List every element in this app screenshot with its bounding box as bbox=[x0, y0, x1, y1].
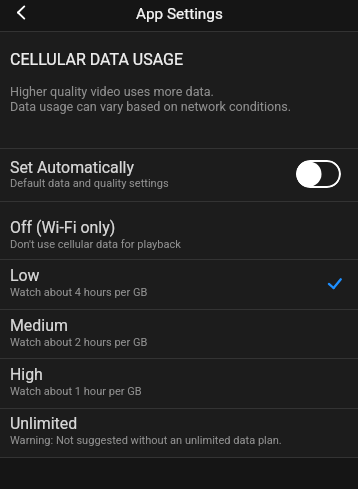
staticText: Low bbox=[10, 266, 40, 285]
staticText: Off (Wi-Fi only) bbox=[10, 218, 116, 237]
staticText: Default data and quality settings bbox=[10, 177, 169, 190]
staticText: Don't use cellular data for playback bbox=[10, 238, 181, 251]
staticText: High bbox=[10, 365, 43, 384]
staticText: CELLULAR DATA USAGE bbox=[10, 50, 184, 69]
button[interactable]: Set Automatically bbox=[0, 149, 358, 201]
button[interactable]: Medium bbox=[0, 310, 358, 358]
staticText: Watch about 2 hours per GB bbox=[10, 336, 148, 349]
staticText: Medium bbox=[10, 316, 68, 335]
staticText: Higher quality video uses more data. Dat… bbox=[10, 84, 292, 114]
staticText: Watch about 1 hour per GB bbox=[10, 385, 142, 398]
staticText: App Settings bbox=[136, 5, 223, 23]
staticText: Set Automatically bbox=[10, 158, 134, 177]
staticText: Warning: Not suggested without an unlimi… bbox=[10, 434, 282, 447]
staticText: Unlimited bbox=[10, 414, 78, 433]
button[interactable]: Set Automatically bbox=[296, 160, 341, 188]
button[interactable]: Unlimited bbox=[0, 409, 358, 457]
button[interactable]: Low bbox=[0, 260, 358, 309]
button[interactable]: Back bbox=[0, 0, 42, 31]
button[interactable]: High bbox=[0, 359, 358, 408]
staticText: Watch about 4 hours per GB bbox=[10, 286, 148, 299]
button[interactable]: Off (Wi-Fi only) bbox=[0, 202, 358, 259]
